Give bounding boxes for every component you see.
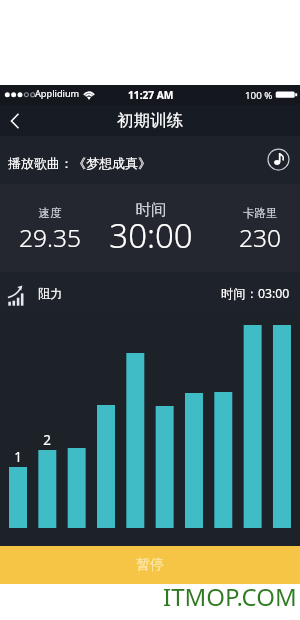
button[interactable]: 速度	[0, 184, 100, 272]
staticText: 100 %	[245, 89, 273, 102]
button[interactable]: 暂停	[0, 546, 300, 584]
staticText: 时间：03:00	[221, 285, 290, 302]
staticText: Applidium	[35, 87, 80, 100]
staticText: 卡路里	[210, 206, 300, 220]
button[interactable]: 时间	[101, 184, 201, 272]
staticText: ITMOP.COM	[163, 580, 297, 613]
staticText: 速度	[0, 206, 100, 220]
staticText: 11:27 AM	[128, 88, 174, 102]
staticText: 初期训练	[117, 110, 183, 131]
staticText: 1	[14, 448, 22, 466]
button[interactable]: Back	[0, 105, 32, 136]
staticText: 230	[210, 221, 300, 254]
staticText: 阻力	[38, 286, 63, 301]
staticText: 30:00	[101, 213, 201, 258]
staticText: 时间	[101, 200, 201, 220]
button[interactable]: Music	[266, 147, 290, 171]
staticText: 播放歌曲：《梦想成真》	[8, 155, 151, 171]
staticText: 暂停	[136, 556, 164, 574]
staticText: 2	[43, 431, 51, 449]
staticText: 29.35	[0, 221, 100, 254]
button[interactable]: 卡路里	[210, 184, 300, 272]
